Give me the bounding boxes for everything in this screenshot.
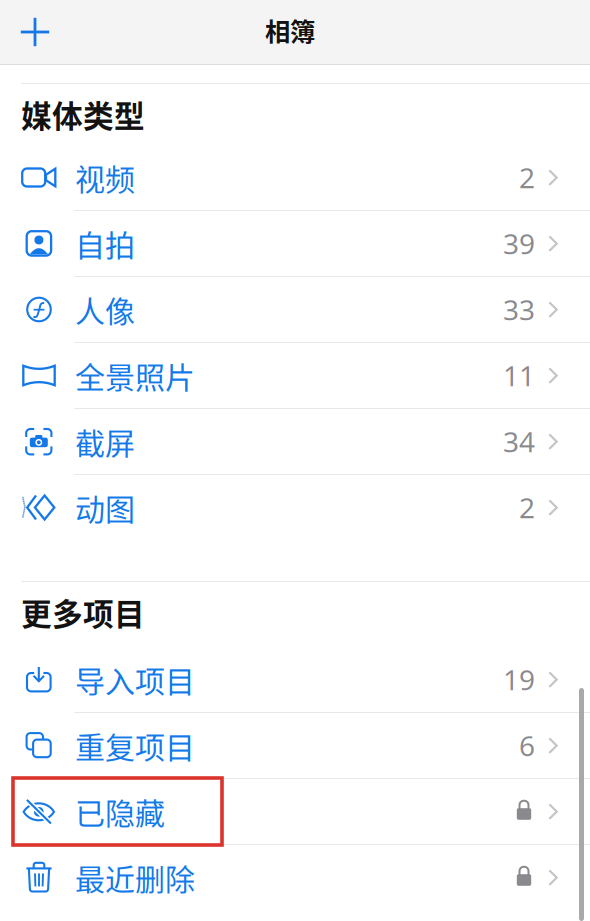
staticText: 相簿: [265, 12, 315, 48]
button[interactable]: 截屏: [0, 409, 590, 475]
button[interactable]: 自拍: [0, 211, 590, 277]
button[interactable]: 动图: [0, 475, 590, 541]
button[interactable]: New Album: [13, 10, 57, 54]
staticText: 11: [503, 357, 535, 394]
staticText: 全景照片: [75, 354, 195, 397]
staticText: 媒体类型: [21, 92, 145, 136]
staticText: 2: [519, 489, 535, 526]
button[interactable]: 最近删除: [0, 845, 590, 911]
staticText: 最近删除: [75, 856, 195, 899]
staticText: 2: [519, 159, 535, 196]
button[interactable]: 已隐藏: [0, 779, 590, 845]
staticText: 39: [503, 225, 535, 262]
button[interactable]: 人像: [0, 277, 590, 343]
button[interactable]: 视频: [0, 145, 590, 211]
button[interactable]: 重复项目: [0, 713, 590, 779]
staticText: 更多项目: [21, 590, 145, 634]
button[interactable]: 全景照片: [0, 343, 590, 409]
staticText: 截屏: [75, 420, 135, 463]
staticText: 视频: [75, 156, 135, 199]
staticText: 自拍: [75, 222, 135, 265]
staticText: 重复项目: [75, 724, 195, 767]
staticText: 33: [503, 291, 535, 328]
staticText: 导入项目: [75, 658, 195, 701]
staticText: 已隐藏: [75, 790, 165, 833]
staticText: 19: [503, 661, 535, 698]
staticText: 34: [503, 423, 535, 460]
staticText: 6: [519, 727, 535, 764]
staticText: 人像: [75, 288, 135, 331]
button[interactable]: 导入项目: [0, 647, 590, 713]
staticText: 动图: [75, 486, 135, 529]
